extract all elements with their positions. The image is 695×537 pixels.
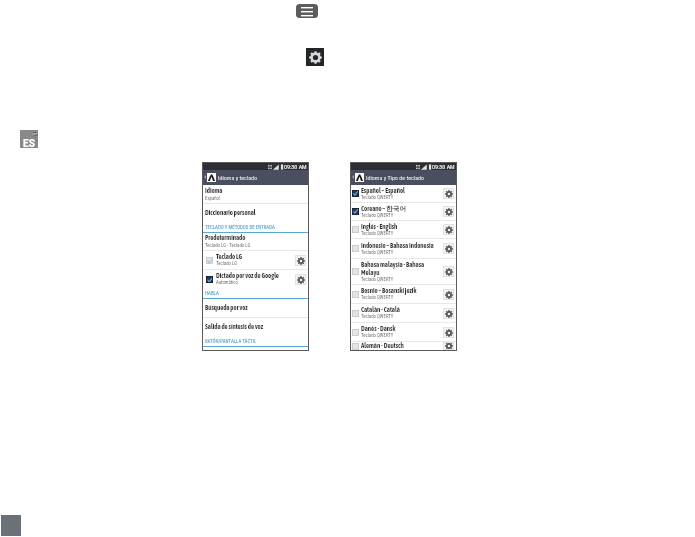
staticText: Catalán - Català <box>361 306 400 314</box>
staticText: Bahasa malaysia - Bahasa Melayu <box>361 261 437 277</box>
button[interactable]: Keyboard settings <box>443 206 454 217</box>
button[interactable]: Keyboard settings <box>295 255 306 266</box>
staticText: Automático <box>216 280 238 286</box>
button[interactable]: Keyboard settings <box>443 188 454 199</box>
staticText: 09:30 AM <box>284 163 307 170</box>
staticText: Teclado QWERTY <box>361 231 394 237</box>
button[interactable]: Catalán - Català <box>351 304 456 322</box>
staticText: Teclado LG <box>216 253 243 261</box>
button[interactable]: Keyboard settings <box>443 224 454 235</box>
staticText: Coreano – 한국어 <box>361 205 407 213</box>
staticText: Inglés - English <box>361 223 398 231</box>
staticText: Salida de síntesis de voz <box>205 323 264 331</box>
button[interactable]: Diccionario personal <box>203 204 308 222</box>
staticText: Danés - Dansk <box>361 325 396 333</box>
staticText: Indonesio – Bahasa Indonesia <box>361 242 434 250</box>
staticText: Idioma y teclado <box>218 174 258 181</box>
staticText: Diccionario personal <box>205 209 256 217</box>
button[interactable]: Alemán - Deutsch <box>351 342 456 350</box>
button[interactable]: Predeterminado <box>203 233 308 250</box>
button[interactable]: Bahasa malaysia - Bahasa Melayu <box>351 259 456 284</box>
button[interactable]: Spanish keyboard <box>20 130 38 148</box>
staticText: Teclado QWERTY <box>361 295 394 301</box>
staticText: Español <box>205 196 221 202</box>
button[interactable]: Keyboard settings <box>443 266 454 277</box>
staticText: Teclado LG <box>216 261 237 267</box>
button[interactable]: Teclado LG <box>203 251 308 269</box>
button[interactable]: Inglés - English <box>351 221 456 238</box>
staticText: Teclado QWERTY <box>361 314 394 320</box>
button[interactable]: Settings <box>306 48 324 66</box>
staticText: ES <box>23 138 35 150</box>
staticText: Predeterminado <box>205 234 246 242</box>
button[interactable]: Coreano – 한국어 <box>351 203 456 220</box>
staticText: Dictado por voz de Google <box>216 272 279 280</box>
button[interactable]: Menu <box>296 4 318 18</box>
button[interactable]: Keyboard settings <box>443 243 454 254</box>
staticText: Teclado LG - Teclado LG <box>205 243 251 249</box>
button[interactable]: Indonesio – Bahasa Indonesia <box>351 239 456 258</box>
button[interactable]: Danés - Dansk <box>351 323 456 341</box>
button[interactable]: Keyboard settings <box>295 274 306 285</box>
staticText: Idioma y Tipo de teclado <box>366 174 425 181</box>
staticText: Alemán - Deutsch <box>361 342 404 350</box>
button[interactable]: Keyboard settings <box>443 289 454 300</box>
staticText: Español – Español <box>361 187 405 195</box>
staticText: HABLA <box>205 290 219 296</box>
staticText: Bosnio – Bosanski jezik <box>361 287 417 295</box>
staticText: TECLADO Y MÉTODOS DE ENTRADA <box>205 224 275 230</box>
staticText: RATÓN/PANTALLA TÁCTIL <box>205 338 257 344</box>
staticText: Búsqueda por voz <box>205 304 248 312</box>
button[interactable]: Keyboard settings <box>443 327 454 338</box>
button[interactable]: Idioma <box>203 185 308 203</box>
button[interactable]: Español – Español <box>351 185 456 202</box>
staticText: Teclado QWERTY <box>361 250 394 256</box>
button[interactable]: Salida de síntesis de voz <box>203 318 308 336</box>
staticText: Teclado QWERTY <box>361 333 394 339</box>
staticText: Teclado QWERTY <box>361 213 394 219</box>
button[interactable]: Keyboard settings <box>443 308 454 319</box>
staticText: Idioma <box>205 187 223 195</box>
staticText: 09:30 AM <box>432 163 455 170</box>
button[interactable]: Dictado por voz de Google <box>203 270 308 288</box>
staticText: Teclado QWERTY <box>361 277 394 283</box>
button[interactable]: Bosnio – Bosanski jezik <box>351 285 456 303</box>
button[interactable]: Keyboard settings <box>443 342 454 350</box>
staticText: Teclado QWERTY <box>361 195 394 201</box>
button[interactable]: Búsqueda por voz <box>203 299 308 317</box>
